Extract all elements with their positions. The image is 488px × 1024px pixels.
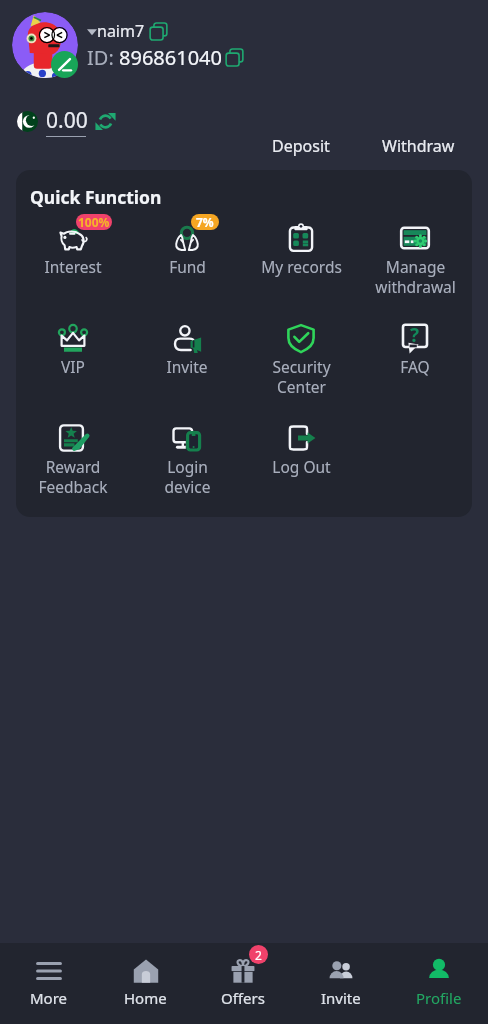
staticText: Invite: [321, 988, 361, 1008]
button[interactable]: Home: [97, 943, 194, 1024]
staticText: 7%: [196, 214, 214, 230]
button[interactable]: Profile: [390, 943, 488, 1024]
button[interactable]: Log Out: [244, 415, 358, 515]
staticText: 100%: [78, 214, 110, 230]
staticText: Home: [124, 988, 167, 1008]
staticText: Log Out: [272, 456, 331, 477]
staticText: FAQ: [400, 356, 430, 377]
button[interactable]: More: [0, 943, 97, 1024]
staticText: Reward Feedback: [38, 456, 108, 497]
button[interactable]: Copy ID: [225, 48, 244, 67]
button[interactable]: Withdraw: [356, 131, 481, 161]
staticText: Offers: [221, 988, 265, 1008]
button[interactable]: Login device: [130, 415, 244, 515]
button[interactable]: 7%: [130, 215, 244, 315]
staticText: Fund: [169, 256, 206, 277]
button[interactable]: VIP: [16, 315, 130, 415]
staticText: 0.00: [46, 106, 88, 135]
staticText: 896861040: [119, 44, 222, 71]
button[interactable]: Deposit: [246, 131, 356, 161]
button[interactable]: 100%: [16, 215, 130, 315]
staticText: More: [30, 988, 68, 1008]
button[interactable]: Reward Feedback: [16, 415, 130, 515]
staticText: Withdraw: [382, 135, 455, 157]
button[interactable]: Edit avatar: [51, 51, 78, 78]
button[interactable]: Refresh balance: [95, 111, 116, 132]
staticText: Profile: [416, 988, 462, 1008]
button[interactable]: Security Center: [244, 315, 358, 415]
staticText: 2: [255, 947, 262, 963]
button[interactable]: Copy username: [149, 22, 168, 41]
button[interactable]: 2: [194, 943, 292, 1024]
staticText: Login device: [164, 456, 211, 497]
staticText: Manage withdrawal: [375, 256, 456, 297]
staticText: naim7: [97, 20, 145, 42]
button[interactable]: Invite: [292, 943, 390, 1024]
button[interactable]: ?: [358, 315, 472, 415]
staticText: VIP: [61, 356, 85, 377]
staticText: Invite: [166, 356, 208, 377]
button[interactable]: Invite: [130, 315, 244, 415]
staticText: Quick Function: [30, 185, 162, 209]
button[interactable]: Manage withdrawal: [358, 215, 472, 315]
staticText: My records: [261, 256, 342, 277]
staticText: ?: [410, 322, 420, 348]
staticText: Deposit: [272, 135, 330, 157]
staticText: Security Center: [272, 356, 331, 397]
button[interactable]: My records: [244, 215, 358, 315]
staticText: ID:: [87, 44, 119, 71]
staticText: Interest: [44, 256, 102, 277]
